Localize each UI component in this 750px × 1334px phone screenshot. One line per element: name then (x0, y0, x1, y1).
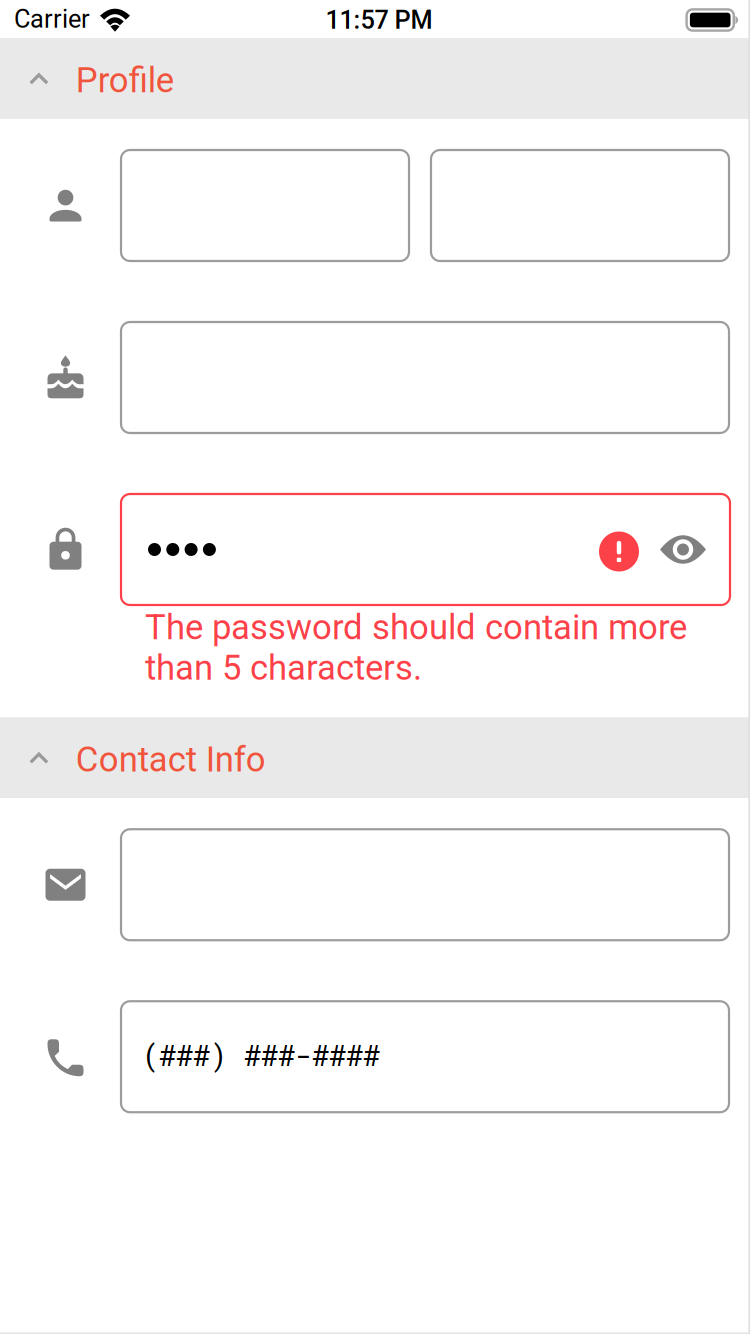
staticText: Contact Info (76, 739, 266, 780)
button[interactable]: Profile (0, 38, 750, 119)
staticText: The password should contain more than 5 … (145, 607, 687, 688)
button[interactable] (121, 322, 729, 433)
button[interactable] (121, 829, 729, 940)
staticText: 11:57 PM (325, 5, 432, 35)
staticText: Carrier (14, 4, 90, 34)
button[interactable] (431, 150, 729, 261)
staticText: (###) ###-#### (142, 1036, 380, 1074)
button[interactable]: Contact Info (0, 717, 750, 798)
button[interactable] (121, 150, 409, 261)
button[interactable] (121, 494, 730, 605)
staticText: Profile (76, 60, 174, 101)
button[interactable]: (###) ###-#### (121, 1001, 729, 1112)
